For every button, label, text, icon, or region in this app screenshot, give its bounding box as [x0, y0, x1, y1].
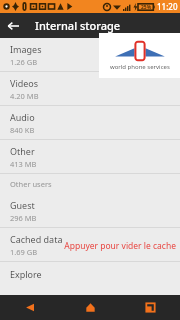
staticText: 4.20 MB [10, 91, 39, 101]
staticText: 413 MB [10, 159, 37, 169]
button[interactable]: Back [0, 295, 60, 320]
button[interactable]: Images [0, 38, 180, 71]
staticText: Other users [10, 179, 52, 189]
button[interactable]: Other [0, 140, 180, 173]
button[interactable]: Recents [120, 295, 180, 320]
staticText: Cached data [10, 233, 63, 245]
staticText: 840 KB [10, 125, 35, 135]
staticText: Explore [10, 268, 42, 280]
button[interactable]: world phone services [99, 33, 180, 78]
staticText: 11:20 [157, 1, 178, 12]
button[interactable]: Explore [0, 262, 180, 286]
button[interactable]: Videos [0, 72, 180, 105]
button[interactable]: Guest [0, 194, 180, 227]
button[interactable]: Back [0, 13, 25, 38]
button[interactable]: Home [60, 295, 120, 320]
button[interactable]: Audio [0, 106, 180, 139]
staticText: 296 MB [10, 213, 37, 223]
staticText: 1.69 GB [10, 247, 38, 257]
staticText: Videos [10, 77, 39, 89]
button[interactable]: Cached data [0, 228, 180, 261]
staticText: Other [10, 145, 35, 157]
staticText: 25% [141, 4, 152, 11]
staticText: Images [10, 43, 42, 55]
staticText: Appuyer pour vider le cache [64, 240, 176, 252]
staticText: Audio [10, 111, 35, 123]
staticText: Guest [10, 199, 35, 211]
staticText: 1.26 GB [10, 57, 38, 67]
staticText: Internal storage [35, 18, 121, 33]
staticText: world phone services [110, 63, 170, 71]
